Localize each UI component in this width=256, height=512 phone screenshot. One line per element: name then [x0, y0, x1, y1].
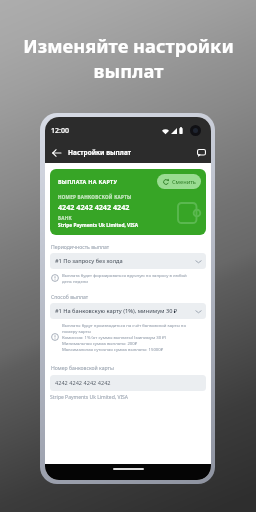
- staticText: 4242 4242 4242 4242: [58, 202, 130, 212]
- staticText: ВЫПЛАТА НА КАРТУ: [58, 178, 118, 185]
- staticText: БАНК: [58, 215, 72, 221]
- staticText: Максимальная суточная сумма выплаты: 150…: [62, 346, 164, 352]
- button[interactable]: #1 По запросу без холда: [50, 253, 206, 269]
- button[interactable]: 4242 4242 4242 4242: [50, 375, 206, 391]
- staticText: 4242 4242 4242 4242: [55, 379, 111, 387]
- staticText: #1 По запросу без холда: [55, 257, 123, 265]
- staticText: Настройки выплат: [68, 148, 131, 157]
- staticText: Выплаты будут производиться на счёт банк…: [62, 322, 186, 328]
- staticText: Изменяйте настройки выплат: [23, 33, 234, 84]
- staticText: #1 На банковскую карту (1%), минимум 30 …: [55, 307, 178, 315]
- staticText: Способ выплат: [51, 294, 89, 301]
- staticText: Stripe Payments Uk Limited, VISA: [50, 394, 129, 401]
- staticText: 12:00: [51, 126, 69, 136]
- button[interactable]: #1 На банковскую карту (1%), минимум 30 …: [50, 303, 206, 319]
- staticText: Периодичность выплат: [51, 244, 110, 251]
- staticText: Stripe Payments Uk Limited, VISA: [58, 222, 139, 229]
- button[interactable]: Назад: [50, 146, 63, 159]
- staticText: номеру карты: [62, 328, 91, 334]
- staticText: Сменить: [172, 178, 196, 186]
- staticText: Выплата будет формироваться вручную по з…: [62, 272, 187, 278]
- staticText: день недели: [62, 278, 88, 284]
- staticText: Номер банковской карты: [51, 365, 114, 372]
- staticText: Минимальная сумма выплаты: 200₽: [62, 340, 138, 346]
- button[interactable]: Чат: [195, 146, 208, 159]
- button[interactable]: Сменить: [157, 174, 201, 189]
- staticText: НОМЕР БАНКОВСКОЙ КАРТЫ: [58, 194, 132, 200]
- staticText: Комиссия: 1% (от суммы выплаты) (минимум…: [62, 334, 167, 340]
